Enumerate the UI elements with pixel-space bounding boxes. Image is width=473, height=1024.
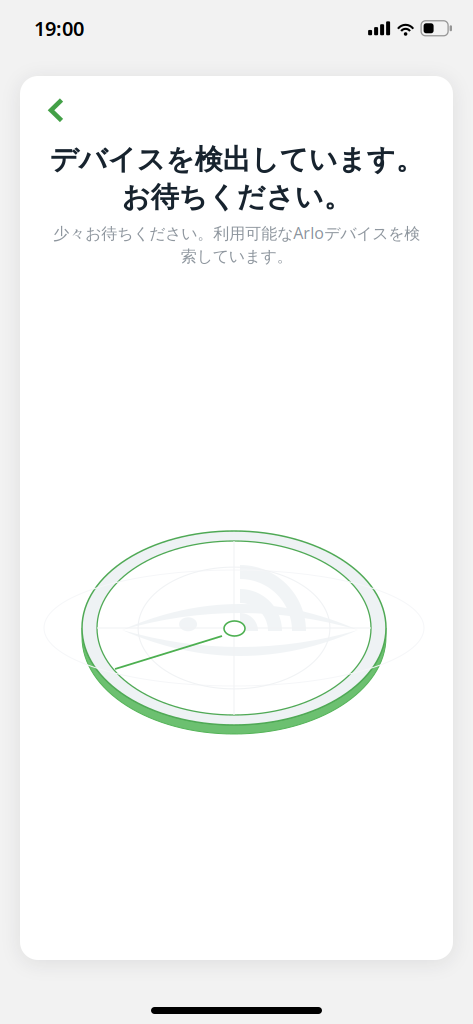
staticText: デバイスを検出しています。 お待ちください。 <box>49 142 423 214</box>
staticText: 少々お待ちください。利用可能なArloデバイスを検 索しています。 <box>53 222 420 266</box>
staticText: 19:00 <box>34 15 84 42</box>
button[interactable]: Back <box>20 76 82 136</box>
